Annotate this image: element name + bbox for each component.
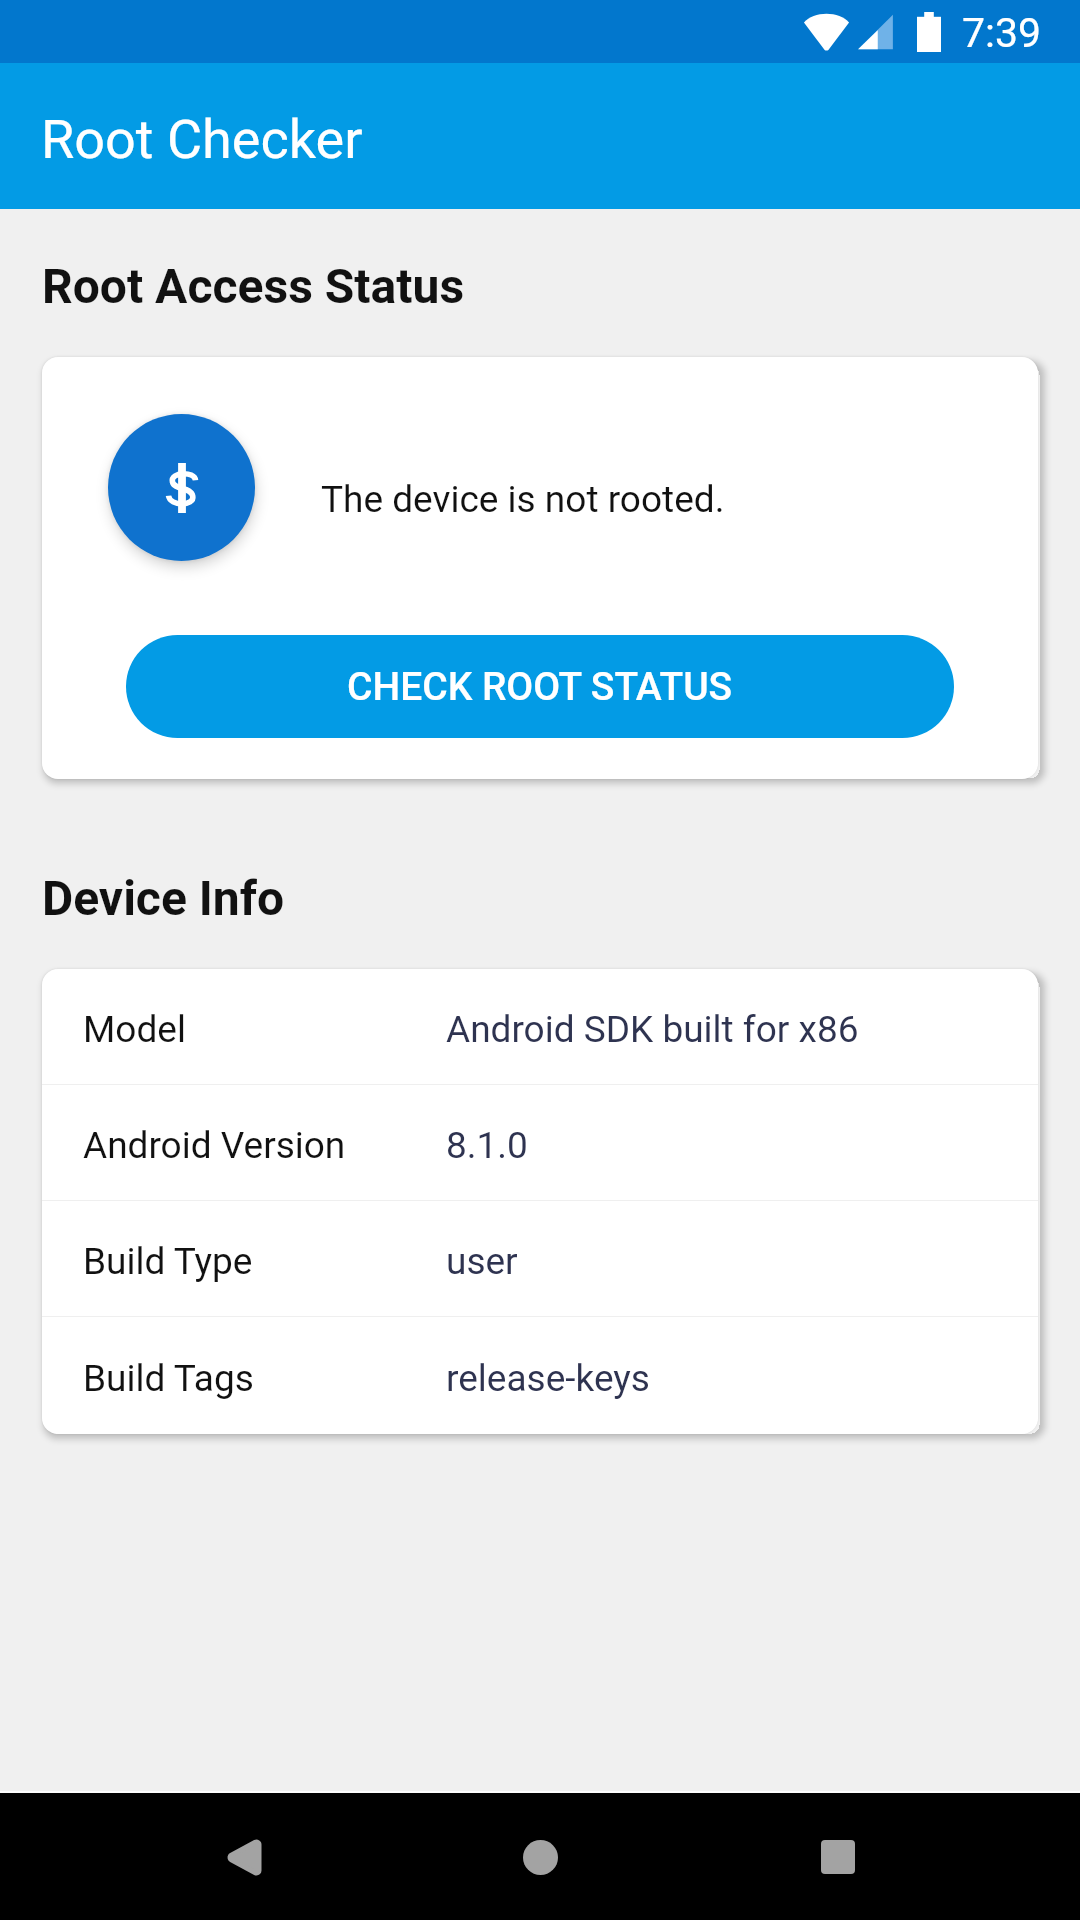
button[interactable]: Back — [188, 1802, 298, 1912]
staticText: 7:39 — [962, 9, 1042, 57]
staticText: user — [446, 1240, 518, 1283]
staticText: Build Tags — [83, 1357, 446, 1400]
button[interactable]: Home — [485, 1802, 595, 1912]
staticText: Build Type — [83, 1240, 446, 1283]
staticText: Root Access Status — [42, 258, 465, 314]
button[interactable]: Recent apps — [783, 1802, 893, 1912]
button[interactable]: Build Type — [42, 1201, 1038, 1316]
button[interactable]: CHECK ROOT STATUS — [126, 635, 954, 738]
staticText: Root Checker — [41, 108, 363, 171]
staticText: Device Info — [42, 870, 285, 926]
staticText: Model — [83, 1008, 446, 1051]
staticText: 8.1.0 — [446, 1124, 528, 1167]
staticText: Android Version — [83, 1124, 446, 1167]
staticText: Android SDK built for x86 — [446, 1008, 859, 1051]
staticText: The device is not rooted. — [321, 478, 725, 521]
staticText: CHECK ROOT STATUS — [347, 664, 733, 710]
button[interactable]: Build Tags — [42, 1317, 1038, 1434]
button[interactable]: Android Version — [42, 1085, 1038, 1200]
button[interactable]: Model — [42, 969, 1038, 1084]
staticText: release-keys — [446, 1357, 650, 1400]
